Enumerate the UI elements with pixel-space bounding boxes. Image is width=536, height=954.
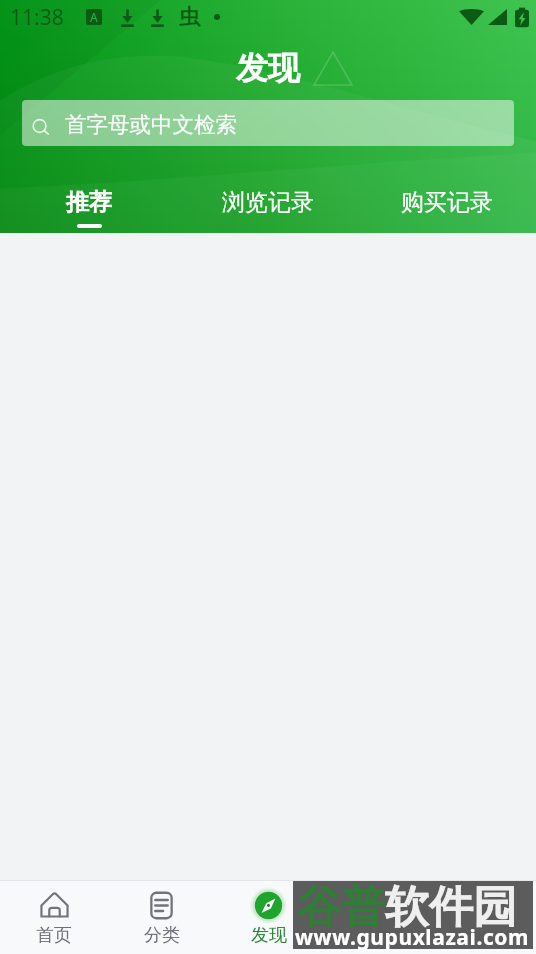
- staticText: 11:38: [10, 3, 64, 32]
- button[interactable]: 发现: [215, 889, 322, 947]
- button[interactable]: 浏览记录: [178, 188, 357, 224]
- staticText: 购物车: [349, 924, 403, 947]
- button[interactable]: 分类: [108, 889, 215, 947]
- button[interactable]: 首页: [0, 889, 108, 947]
- staticText: 首页: [36, 924, 72, 947]
- staticText: 购买记录: [401, 188, 493, 217]
- button[interactable]: 购买记录: [357, 188, 536, 224]
- staticText: 虫: [179, 4, 200, 30]
- staticText: 发现: [236, 48, 300, 88]
- button[interactable]: 推荐: [0, 188, 178, 228]
- staticText: 浏览记录: [222, 188, 314, 217]
- button[interactable]: 购物车: [322, 889, 429, 947]
- staticText: 发现: [251, 924, 287, 947]
- staticText: 首字母或中文检索: [65, 111, 237, 138]
- staticText: 软件园: [385, 881, 517, 935]
- staticText: A: [90, 9, 98, 25]
- staticText: 我的: [465, 924, 501, 947]
- staticText: 分类: [144, 924, 180, 947]
- button[interactable]: 我的: [429, 889, 536, 947]
- staticText: www.gupuxlazai.com: [295, 923, 530, 949]
- staticText: 推荐: [66, 188, 112, 217]
- button[interactable]: 首字母或中文检索: [22, 100, 514, 146]
- staticText: 谷普: [297, 881, 385, 935]
